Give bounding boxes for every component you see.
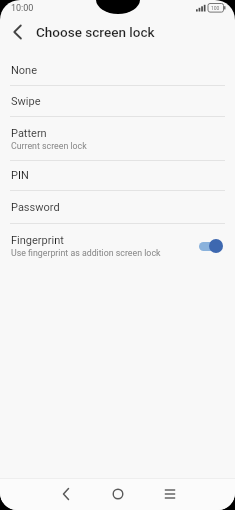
- staticText: Fingerprint: [11, 234, 64, 247]
- button[interactable]: [150, 479, 190, 509]
- button[interactable]: None: [0, 56, 235, 85]
- staticText: Swipe: [11, 95, 41, 108]
- button[interactable]: [46, 479, 86, 509]
- button[interactable]: [98, 479, 138, 509]
- button[interactable]: [0, 18, 34, 46]
- staticText: Current screen lock: [11, 141, 87, 151]
- staticText: None: [11, 64, 38, 77]
- button[interactable]: [199, 238, 223, 254]
- button[interactable]: Pattern: [0, 117, 235, 160]
- staticText: 10:00: [11, 3, 34, 14]
- staticText: Choose screen lock: [36, 24, 155, 40]
- button[interactable]: PIN: [0, 161, 235, 190]
- button[interactable]: Swipe: [0, 86, 235, 116]
- staticText: PIN: [11, 169, 29, 182]
- staticText: Password: [11, 201, 60, 214]
- staticText: Pattern: [11, 127, 47, 140]
- button[interactable]: Fingerprint: [0, 224, 235, 262]
- staticText: 100: [211, 5, 220, 11]
- button[interactable]: Password: [0, 191, 235, 223]
- staticText: Use fingerprint as addition screen lock: [11, 248, 161, 258]
